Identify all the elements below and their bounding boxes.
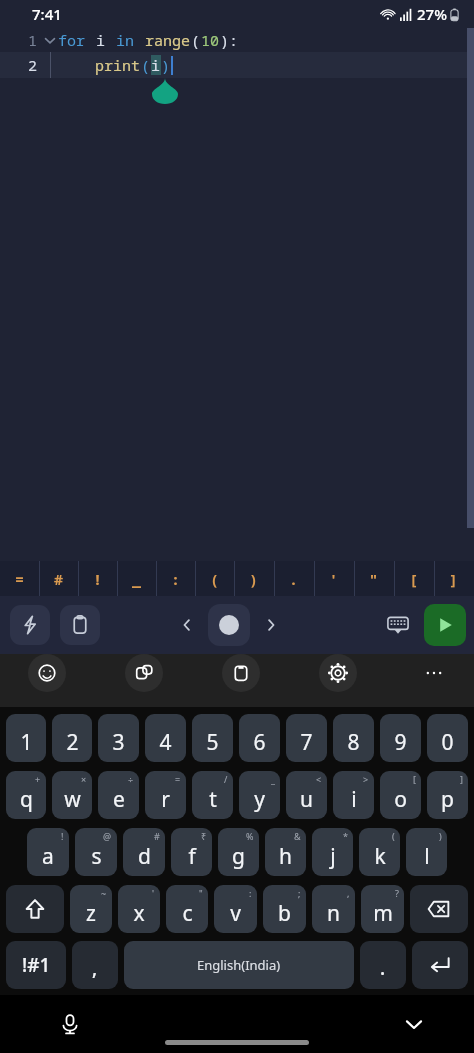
button[interactable]: & xyxy=(265,828,306,876)
button[interactable]: 0 xyxy=(427,714,468,762)
button[interactable]: [ xyxy=(380,771,421,819)
staticText: . xyxy=(289,569,299,589)
button[interactable]: : xyxy=(214,885,257,933)
button[interactable]: < xyxy=(286,771,327,819)
button[interactable]: . xyxy=(274,561,314,596)
staticText: print xyxy=(95,55,141,75)
button[interactable]: 3 xyxy=(98,714,139,762)
button[interactable]: ( xyxy=(195,561,234,596)
button[interactable]: " xyxy=(354,561,394,596)
staticText: 9 xyxy=(394,728,407,757)
button[interactable]: 1 xyxy=(6,714,46,762)
button[interactable]: Backspace xyxy=(410,885,468,933)
button[interactable]: ! xyxy=(27,828,69,876)
button[interactable]: = xyxy=(145,771,186,819)
staticText: f xyxy=(188,842,196,871)
button[interactable]: / xyxy=(192,771,233,819)
button[interactable]: > xyxy=(333,771,374,819)
staticText: u xyxy=(300,785,313,814)
button[interactable]: Enter xyxy=(412,941,468,989)
button[interactable]: ! xyxy=(78,561,117,596)
button[interactable]: * xyxy=(312,828,353,876)
button[interactable]: : xyxy=(156,561,195,596)
button[interactable]: 9 xyxy=(380,714,421,762)
button[interactable]: [ xyxy=(394,561,434,596)
button[interactable]: Shift xyxy=(6,885,64,933)
staticText: [ xyxy=(409,569,419,589)
staticText: 27% xyxy=(417,4,447,24)
staticText: _ xyxy=(271,773,275,785)
staticText: [ xyxy=(413,773,416,785)
button[interactable]: Next xyxy=(254,608,288,642)
button[interactable]: ) xyxy=(406,828,447,876)
button[interactable]: × xyxy=(52,771,92,819)
staticText: i xyxy=(351,785,357,814)
button[interactable]: + xyxy=(6,771,46,819)
button[interactable]: Settings xyxy=(319,654,357,692)
button[interactable]: ₹ xyxy=(171,828,212,876)
button[interactable]: 2 xyxy=(52,714,92,762)
staticText: 8 xyxy=(347,728,360,757)
staticText: * xyxy=(343,830,348,842)
staticText: " xyxy=(199,887,203,899)
staticText: ( xyxy=(141,55,151,75)
button[interactable]: Close keyboard xyxy=(396,1006,432,1042)
button[interactable]: Translate xyxy=(125,654,163,692)
button[interactable]: More options xyxy=(416,655,452,691)
staticText: = xyxy=(175,773,181,785)
staticText: r xyxy=(161,785,170,814)
staticText: = xyxy=(15,569,25,589)
staticText: c xyxy=(182,899,193,928)
button[interactable]: Quick actions xyxy=(10,605,50,645)
button[interactable]: ; xyxy=(263,885,306,933)
button[interactable]: = xyxy=(0,561,39,596)
button[interactable]: Hide keyboard xyxy=(378,605,418,645)
button[interactable]: Paste xyxy=(60,605,100,645)
staticText: & xyxy=(294,830,301,842)
button[interactable]: 6 xyxy=(239,714,280,762)
button[interactable]: " xyxy=(166,885,208,933)
button[interactable]: Emoji xyxy=(28,654,66,692)
button[interactable]: 8 xyxy=(333,714,374,762)
button[interactable]: , xyxy=(312,885,355,933)
staticText: s xyxy=(91,842,102,871)
staticText: p xyxy=(441,785,454,814)
button[interactable]: ? xyxy=(361,885,404,933)
button[interactable]: Run xyxy=(424,604,466,646)
button[interactable]: English(India) xyxy=(124,941,354,989)
staticText: w xyxy=(64,785,81,814)
staticText: t xyxy=(209,785,217,814)
button[interactable]: , xyxy=(72,941,118,989)
button[interactable]: ) xyxy=(234,561,274,596)
button[interactable]: % xyxy=(218,828,259,876)
button[interactable]: ~ xyxy=(70,885,112,933)
button[interactable]: Clipboard xyxy=(222,654,260,692)
button[interactable]: ' xyxy=(118,885,160,933)
button[interactable]: . xyxy=(360,941,406,989)
button[interactable]: # xyxy=(123,828,165,876)
button[interactable]: Previous xyxy=(170,608,204,642)
staticText: ) xyxy=(161,55,171,75)
button[interactable]: Cursor xyxy=(208,604,250,646)
button[interactable]: ' xyxy=(314,561,354,596)
button[interactable]: 4 xyxy=(145,714,186,762)
staticText: ) xyxy=(439,830,442,842)
button[interactable]: ] xyxy=(427,771,468,819)
staticText: > xyxy=(363,773,369,785)
button[interactable]: Voice input xyxy=(52,1006,88,1042)
button[interactable]: ] xyxy=(434,561,474,596)
staticText: English(India) xyxy=(197,956,281,974)
button[interactable]: !#1 xyxy=(6,941,66,989)
button[interactable]: _ xyxy=(239,771,280,819)
button[interactable]: @ xyxy=(75,828,117,876)
button[interactable]: 7 xyxy=(286,714,327,762)
staticText: 2 xyxy=(28,55,38,75)
button[interactable]: ( xyxy=(359,828,400,876)
staticText: !#1 xyxy=(22,952,51,978)
button[interactable]: _ xyxy=(117,561,156,596)
button[interactable]: ÷ xyxy=(98,771,139,819)
button[interactable]: 5 xyxy=(192,714,233,762)
button[interactable]: # xyxy=(39,561,78,596)
staticText: range xyxy=(145,30,191,50)
